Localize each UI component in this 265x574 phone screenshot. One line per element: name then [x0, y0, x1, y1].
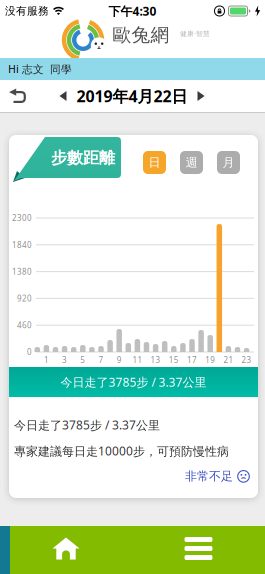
staticText: 非常不足: [185, 469, 233, 484]
staticText: 19: [205, 355, 215, 365]
button[interactable]: 2019年4月22日: [76, 85, 187, 107]
staticText: 1: [44, 355, 49, 365]
staticText: 3: [62, 355, 67, 365]
staticText: 7: [98, 355, 103, 365]
button[interactable]: 日: [143, 151, 166, 174]
button[interactable]: 週: [180, 151, 203, 174]
staticText: 歐兔網: [112, 23, 169, 46]
staticText: 健康·智慧: [180, 29, 210, 38]
staticText: 920: [17, 293, 32, 304]
staticText: 今日走了3785步 / 3.37公里: [14, 417, 160, 433]
staticText: 9: [117, 355, 122, 365]
staticText: 11: [132, 355, 142, 365]
staticText: 5: [80, 355, 85, 365]
staticText: Hi 志文 同學: [8, 62, 72, 76]
staticText: 專家建議每日走10000步，可預防慢性病: [14, 443, 229, 459]
staticText: 1840: [12, 239, 32, 250]
staticText: 17: [187, 355, 197, 365]
button[interactable]: [197, 91, 204, 101]
staticText: 1380: [12, 266, 32, 277]
staticText: 23: [242, 355, 252, 365]
staticText: 0: [27, 347, 32, 357]
staticText: 15: [169, 355, 179, 365]
staticText: 21: [223, 355, 233, 365]
staticText: 2019年4月22日: [76, 85, 187, 107]
staticText: 没有服務: [5, 4, 49, 17]
staticText: 下午4:30: [108, 3, 156, 19]
button[interactable]: 月: [217, 151, 240, 174]
staticText: 日: [148, 155, 160, 170]
button[interactable]: [0, 526, 132, 574]
button[interactable]: [59, 91, 66, 101]
staticText: 2300: [12, 213, 32, 223]
staticText: 月: [222, 155, 234, 170]
staticText: 13: [151, 355, 161, 365]
staticText: 今日走了3785步 / 3.37公里: [60, 374, 206, 390]
button[interactable]: [132, 526, 265, 574]
staticText: 步數距離: [51, 148, 115, 168]
button[interactable]: [8, 88, 26, 103]
staticText: 週: [185, 155, 197, 170]
staticText: 460: [17, 320, 32, 330]
